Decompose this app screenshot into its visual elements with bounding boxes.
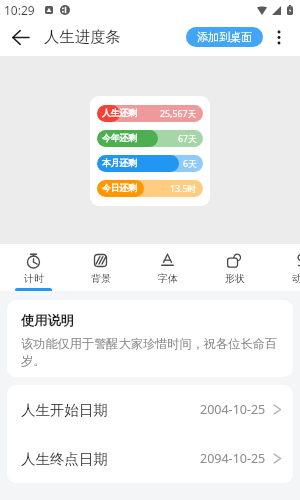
staticText: 今日还剩	[102, 183, 138, 194]
staticText: 10:29	[4, 2, 35, 18]
staticText: 人生进度条	[44, 27, 121, 46]
staticText: 字体	[158, 272, 178, 285]
button[interactable]: Back	[9, 26, 31, 48]
staticText: 动画	[292, 272, 300, 285]
button[interactable]: 添加到桌面	[186, 27, 263, 47]
staticText: 人生开始日期	[21, 401, 108, 419]
staticText: 2094-10-25	[200, 450, 266, 467]
staticText: 人生还剩	[102, 108, 138, 119]
button[interactable]: 人生终点日期	[7, 434, 293, 483]
staticText: 25,567天	[160, 108, 197, 120]
staticText: 13.5时	[170, 183, 197, 195]
staticText: 本月还剩	[102, 158, 138, 169]
staticText: 今年还剩	[102, 133, 138, 144]
button[interactable]: 背景	[67, 244, 134, 291]
button[interactable]: 字体	[134, 244, 201, 291]
staticText: 使用说明	[21, 312, 74, 329]
staticText: 背景	[91, 272, 111, 285]
staticText: 形状	[225, 272, 245, 285]
staticText: 67天	[178, 133, 197, 145]
staticText: 2004-10-25	[200, 401, 266, 418]
button[interactable]: 动画	[268, 244, 300, 291]
staticText: 6天	[183, 158, 197, 170]
staticText: 人生终点日期	[21, 450, 108, 468]
staticText: 计时	[24, 272, 44, 285]
button[interactable]: 形状	[201, 244, 268, 291]
button[interactable]: More options	[269, 27, 289, 47]
button[interactable]: 人生开始日期	[7, 385, 293, 434]
staticText: 添加到桌面	[197, 30, 252, 44]
staticText: 该功能仅用于警醒大家珍惜时间，祝各位长命百岁。	[21, 336, 280, 369]
button[interactable]: 计时	[0, 244, 67, 291]
